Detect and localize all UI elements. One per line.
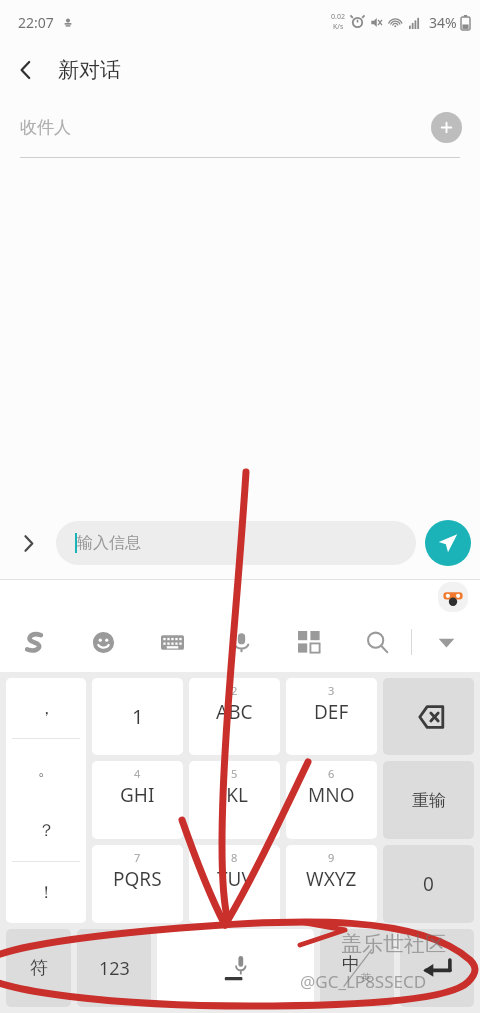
button[interactable]: Back [0, 44, 52, 96]
button[interactable]: 输入信息 [56, 521, 416, 565]
button[interactable]: 5 [189, 761, 280, 839]
staticText: 盖乐世社区 [341, 931, 446, 957]
button[interactable]: 6 [286, 761, 377, 839]
button[interactable]: 8 [189, 845, 280, 923]
button[interactable]: 0 [383, 845, 474, 923]
staticText: K/s [333, 22, 344, 32]
button[interactable]: 123 [77, 929, 151, 1007]
button[interactable]: Assistant [438, 582, 468, 612]
staticText: ， [38, 698, 55, 719]
button[interactable]: Collapse keyboard [412, 620, 480, 664]
staticText: ！ [38, 882, 55, 903]
staticText: 4 [134, 766, 141, 781]
staticText: 重输 [412, 790, 446, 811]
staticText: 34% [429, 13, 457, 32]
button[interactable]: Chinese English toggle [320, 929, 394, 1007]
button[interactable]: Keyboard layout [138, 620, 207, 664]
staticText: 3 [328, 683, 335, 698]
staticText: MNO [308, 782, 355, 808]
staticText: 123 [99, 956, 130, 981]
staticText: 22:07 [18, 13, 54, 32]
button[interactable]: 7 [92, 845, 183, 923]
staticText: 0.02 [331, 12, 345, 22]
button[interactable]: Expand options [0, 507, 56, 579]
staticText: 新对话 [58, 57, 121, 83]
button[interactable]: 3 [286, 678, 377, 755]
staticText: TUV [217, 866, 253, 892]
staticText: 符 [30, 957, 48, 980]
staticText: 2 [231, 683, 238, 698]
button[interactable]: Space [157, 929, 314, 1007]
button[interactable]: More tools [275, 620, 343, 664]
staticText: WXYZ [306, 866, 357, 892]
staticText: 6 [328, 766, 335, 781]
button[interactable]: ， [6, 678, 86, 923]
staticText: 0 [423, 871, 434, 897]
button[interactable]: 1 [92, 678, 183, 755]
button[interactable]: Voice input [207, 620, 275, 664]
staticText: 1 [132, 703, 144, 730]
button[interactable]: 9 [286, 845, 377, 923]
staticText: GHI [120, 782, 155, 808]
staticText: 英 [361, 971, 371, 984]
staticText: 8 [231, 850, 238, 865]
staticText: JKL [221, 782, 248, 808]
button[interactable]: 4 [92, 761, 183, 839]
staticText: @GC_LP8SSECD [300, 970, 427, 993]
staticText: 。 [38, 759, 55, 780]
staticText: ABC [216, 699, 253, 725]
staticText: DEF [314, 699, 349, 725]
button[interactable]: Send [425, 520, 471, 566]
staticText: 7 [134, 850, 141, 865]
button[interactable]: Search [343, 620, 411, 664]
staticText: 9 [328, 850, 335, 865]
staticText: 输入信息 [77, 533, 141, 553]
button[interactable]: 2 [189, 678, 280, 755]
staticText: PQRS [113, 866, 162, 892]
button[interactable]: 符 [6, 929, 71, 1007]
button[interactable]: Backspace [383, 678, 474, 755]
staticText: ？ [38, 820, 55, 841]
button[interactable]: Enter [400, 929, 474, 1007]
staticText: 中 [342, 953, 360, 976]
button[interactable]: Add recipient [431, 112, 462, 143]
staticText: 收件人 [20, 117, 71, 138]
button[interactable]: 重输 [383, 761, 474, 839]
button[interactable]: Sogou input [0, 620, 69, 664]
button[interactable]: Emoji [69, 620, 138, 664]
staticText: 5 [231, 766, 238, 781]
